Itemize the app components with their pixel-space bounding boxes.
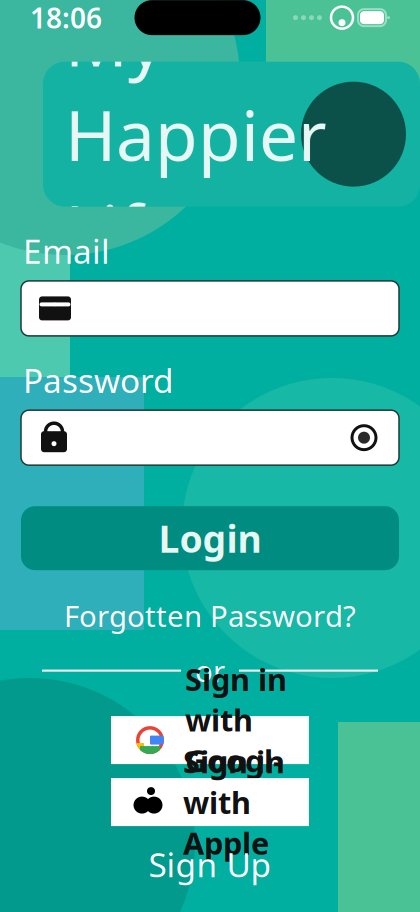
staticText: Password (23, 358, 174, 402)
staticText: My Happier Life (65, 0, 327, 276)
staticText: 18:06 (30, 0, 102, 36)
button[interactable]: Forgotten Password? (52, 590, 368, 641)
button[interactable]: Sign Up (132, 834, 287, 894)
button[interactable]: Sign in with Apple (111, 778, 309, 826)
staticText: Forgotten Password? (64, 596, 356, 635)
staticText: Email (23, 229, 110, 273)
staticText: Login (158, 513, 261, 563)
staticText: or (195, 651, 225, 690)
staticText: Sign Up (148, 842, 271, 886)
button[interactable]: Login (21, 506, 399, 570)
button[interactable]: Show password (345, 419, 383, 457)
staticText: Sign in with Apple (183, 741, 285, 863)
button[interactable]: Sign in with Google (111, 716, 309, 764)
staticText: Sign in with Google (185, 659, 287, 821)
